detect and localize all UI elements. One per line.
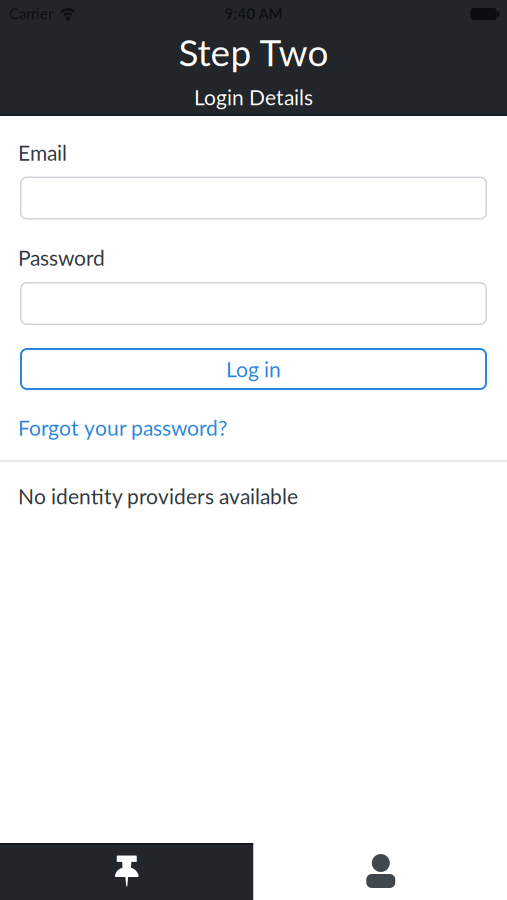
staticText: Email bbox=[18, 140, 67, 165]
staticText: Step Two bbox=[178, 30, 328, 74]
staticText: Login Details bbox=[194, 84, 313, 110]
staticText: No identity providers available bbox=[18, 483, 298, 509]
staticText: Carrier bbox=[9, 4, 53, 22]
staticText: Password bbox=[18, 245, 105, 270]
button[interactable]: Profile bbox=[253, 843, 507, 900]
button[interactable]: Password bbox=[20, 282, 487, 325]
staticText: Log in bbox=[226, 356, 281, 382]
button[interactable]: Pins bbox=[0, 843, 253, 900]
staticText: Forgot your password? bbox=[18, 415, 227, 440]
button[interactable]: Log in bbox=[20, 348, 487, 390]
staticText: 9:40 AM bbox=[224, 4, 282, 22]
button[interactable]: Forgot your password? bbox=[18, 415, 227, 440]
button[interactable]: Email bbox=[20, 176, 487, 219]
